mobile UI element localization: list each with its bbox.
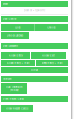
button[interactable]: Allow Exit	[31, 52, 66, 59]
staticText: Door 01 • 1234 Offc	[24, 9, 45, 12]
staticText: Allow Exit	[42, 54, 55, 57]
staticText: Door Lockdown	[2, 44, 17, 47]
staticText: Call Intercom (Today)	[6, 85, 22, 91]
button[interactable]: Deny Entry + Exit	[36, 60, 68, 66]
button[interactable]: Lock	[1, 24, 34, 31]
button[interactable]: Allow Entry + Exit	[1, 60, 35, 66]
button[interactable]: Call Intercom (Today)	[1, 83, 27, 94]
staticText: Clear	[31, 68, 38, 72]
staticText: View Recent Cards	[2, 97, 23, 100]
staticText: Unlock	[47, 26, 55, 29]
button[interactable]: View Recent Cards	[1, 105, 33, 112]
staticText: Unlock Latched	[6, 34, 23, 37]
staticText: Intercom	[2, 77, 11, 80]
staticText: Door Control	[2, 17, 16, 20]
staticText: Mode	[2, 2, 7, 5]
staticText: Allow Entry + Exit	[6, 61, 29, 65]
button[interactable]: Unlock	[34, 24, 68, 31]
button[interactable]: Allow Entry	[1, 52, 30, 59]
button[interactable]: Clear	[1, 67, 68, 73]
staticText: Lock	[15, 26, 20, 29]
staticText: Allow Entry	[8, 54, 22, 57]
button[interactable]: Unlock Latched	[1, 32, 29, 39]
staticText: View Recent Cards	[6, 107, 28, 110]
staticText: Deny Entry + Exit	[41, 61, 62, 65]
